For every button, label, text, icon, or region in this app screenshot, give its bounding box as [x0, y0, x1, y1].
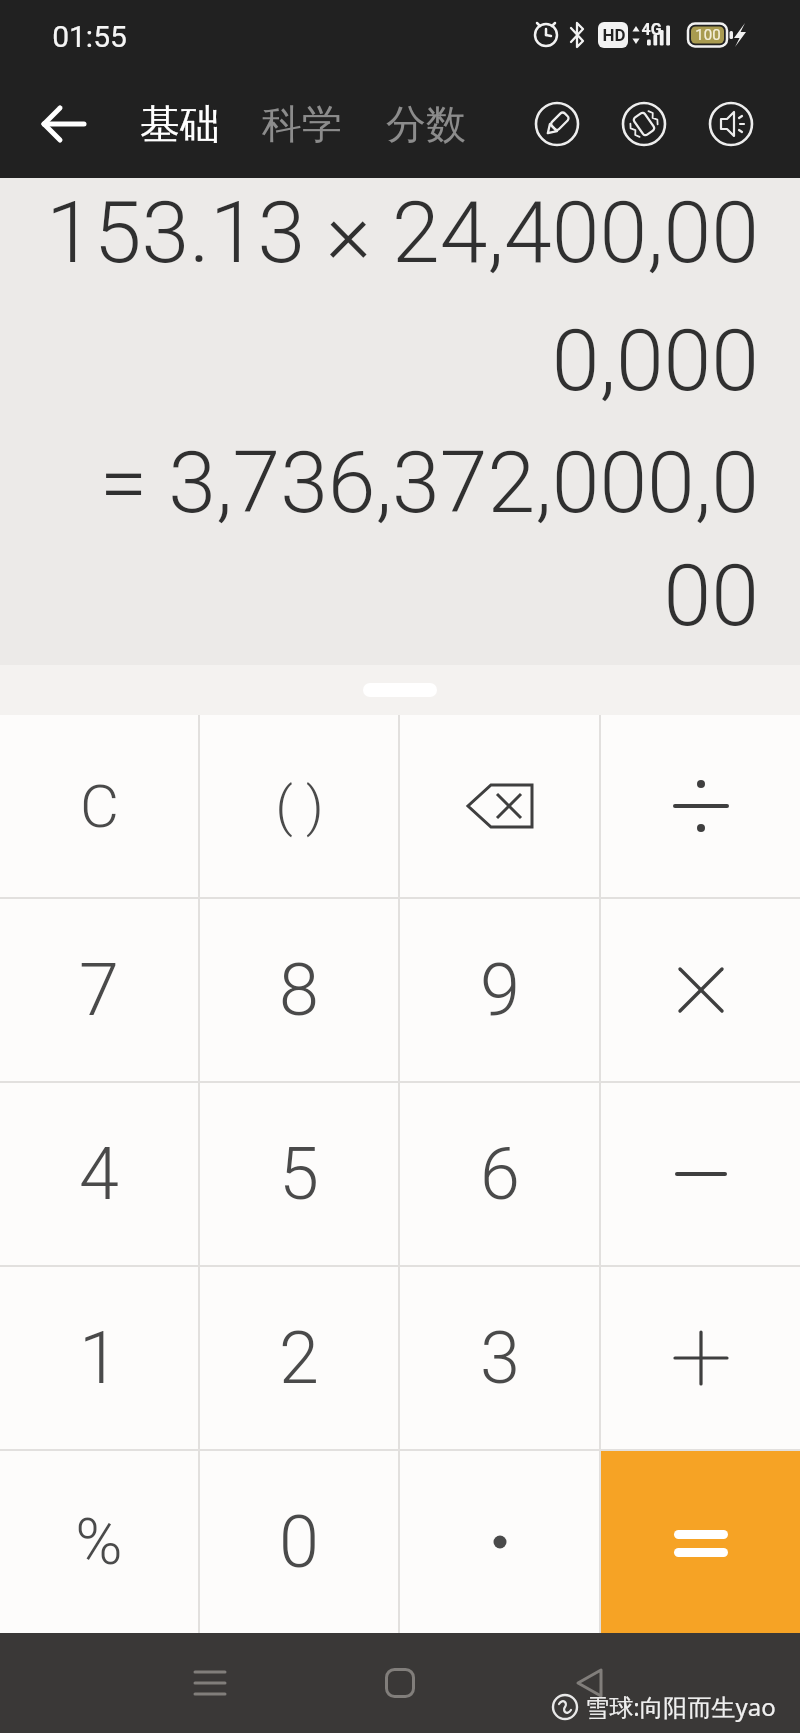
- button[interactable]: [614, 94, 674, 154]
- staticText: HD: [602, 25, 626, 45]
- staticText: = 3,736,372,000,0: [0, 432, 759, 533]
- button[interactable]: [28, 88, 100, 160]
- staticText: ( ): [275, 775, 324, 838]
- staticText: 0,000: [0, 310, 759, 411]
- staticText: 2: [279, 1316, 319, 1400]
- button[interactable]: 分数: [386, 99, 466, 149]
- button[interactable]: C: [0, 715, 198, 897]
- button[interactable]: 5: [200, 1083, 398, 1265]
- staticText: 雪球:向阳而生yao: [585, 1690, 776, 1723]
- button[interactable]: 2: [200, 1267, 398, 1449]
- button[interactable]: 8: [200, 899, 398, 1081]
- button[interactable]: [601, 899, 800, 1081]
- staticText: 00: [0, 545, 759, 646]
- button[interactable]: 0: [200, 1451, 398, 1633]
- staticText: 9: [480, 948, 520, 1032]
- button[interactable]: [400, 715, 599, 897]
- button[interactable]: 9: [400, 899, 599, 1081]
- staticText: 分数: [386, 99, 466, 149]
- button[interactable]: 7: [0, 899, 198, 1081]
- button[interactable]: [400, 1451, 599, 1633]
- staticText: %: [75, 1505, 123, 1580]
- button[interactable]: 基础: [140, 99, 220, 149]
- staticText: 4: [79, 1132, 119, 1216]
- staticText: 8: [279, 948, 319, 1032]
- button[interactable]: %: [0, 1451, 198, 1633]
- button[interactable]: [601, 1083, 800, 1265]
- staticText: 科学: [262, 99, 342, 149]
- button[interactable]: 6: [400, 1083, 599, 1265]
- staticText: C: [80, 771, 119, 841]
- staticText: 3: [480, 1316, 520, 1400]
- staticText: 6: [480, 1132, 520, 1216]
- staticText: 153.13 × 24,400,00: [0, 182, 759, 283]
- button[interactable]: 科学: [262, 99, 342, 149]
- button[interactable]: [175, 1648, 245, 1718]
- button[interactable]: [701, 94, 761, 154]
- button[interactable]: [527, 94, 587, 154]
- staticText: 100: [695, 26, 721, 44]
- button[interactable]: [601, 1451, 800, 1633]
- button[interactable]: [555, 1648, 625, 1718]
- button[interactable]: 3: [400, 1267, 599, 1449]
- button[interactable]: ( ): [200, 715, 398, 897]
- staticText: 基础: [140, 99, 220, 149]
- button[interactable]: 4: [0, 1083, 198, 1265]
- button[interactable]: [601, 715, 800, 897]
- staticText: 4G: [641, 20, 662, 39]
- staticText: 0: [279, 1500, 319, 1584]
- button[interactable]: [601, 1267, 800, 1449]
- button[interactable]: 1: [0, 1267, 198, 1449]
- staticText: 5: [279, 1132, 319, 1216]
- staticText: 7: [79, 948, 119, 1032]
- staticText: 1: [79, 1316, 119, 1400]
- staticText: 01:55: [52, 19, 127, 54]
- button[interactable]: [365, 1648, 435, 1718]
